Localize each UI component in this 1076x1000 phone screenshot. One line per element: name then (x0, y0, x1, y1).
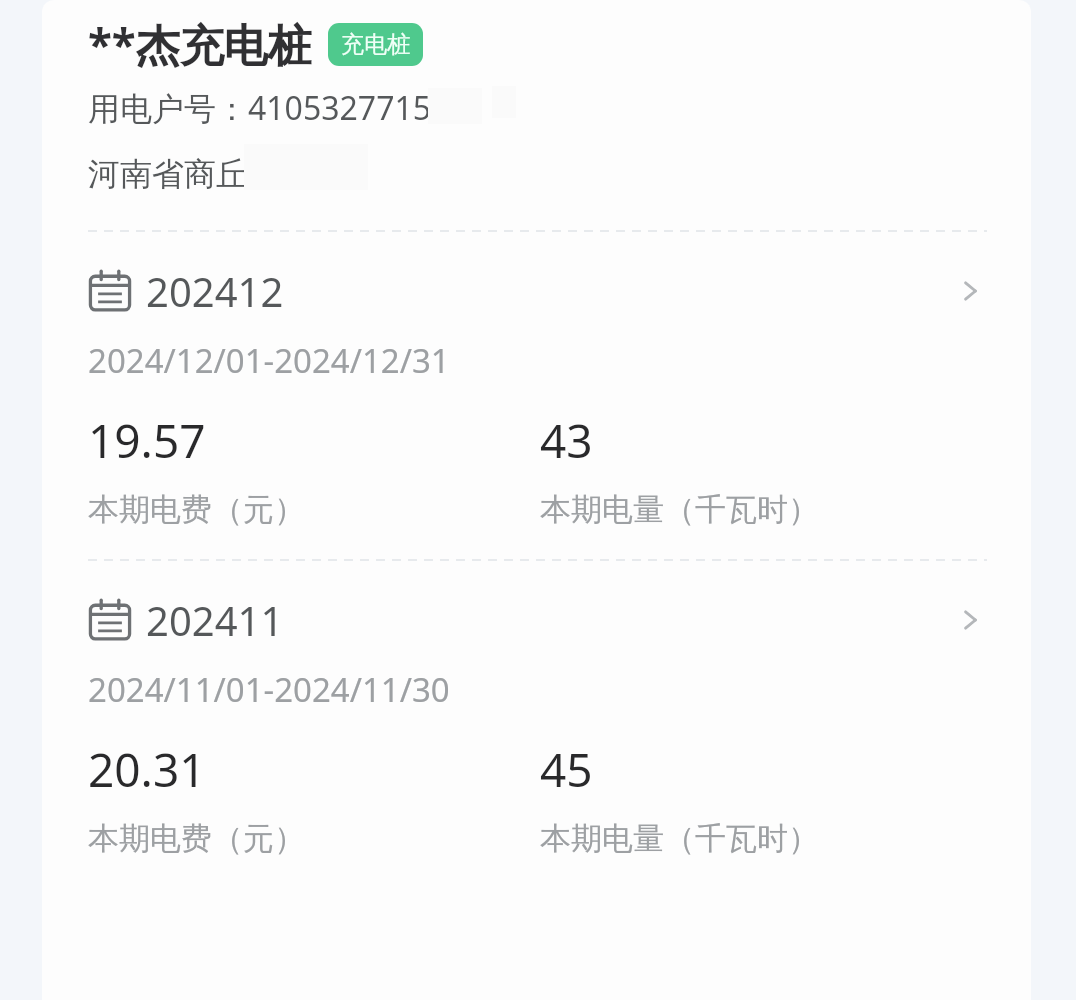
staticText: 20.31 (88, 738, 206, 801)
staticText: 充电桩 (341, 30, 410, 59)
staticText: 本期电量（千瓦时） (540, 819, 819, 858)
button[interactable]: 充电桩 (328, 23, 423, 66)
staticText: **杰充电桩 (88, 14, 312, 74)
other: 查看账单详情 (947, 597, 993, 643)
staticText: 本期电量（千瓦时） (540, 490, 819, 529)
staticText: 202411 (146, 593, 284, 647)
button[interactable]: 202411 (42, 561, 1031, 888)
staticText: 2024/12/01-2024/12/31 (88, 338, 450, 383)
other: 查看账单详情 (947, 268, 993, 314)
staticText: 45 (540, 738, 593, 801)
staticText: 河南省商丘市 (88, 154, 280, 194)
staticText: 19.57 (88, 409, 206, 472)
staticText: 2024/11/01-2024/11/30 (88, 667, 450, 712)
button[interactable]: 202412 (42, 232, 1031, 559)
staticText: 202412 (146, 264, 284, 318)
staticText: 用电户号：410532771557 (88, 86, 468, 130)
staticText: 本期电费（元） (88, 490, 305, 529)
staticText: 43 (540, 409, 593, 472)
staticText: 本期电费（元） (88, 819, 305, 858)
